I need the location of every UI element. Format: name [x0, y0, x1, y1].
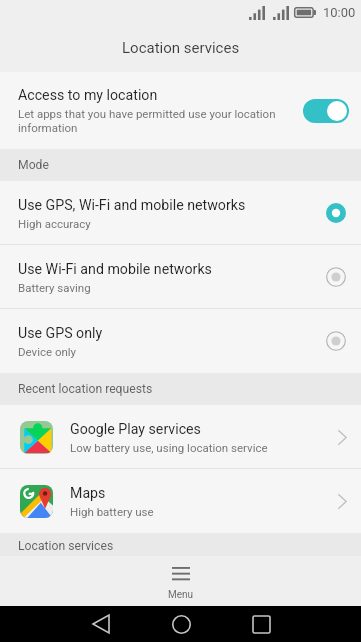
button[interactable]: Back [61, 606, 141, 642]
staticText: Mode [18, 158, 49, 172]
staticText: High accuracy [18, 217, 91, 230]
staticText: Battery saving [18, 281, 91, 294]
button[interactable]: Google Play services [0, 405, 361, 469]
staticText: Use GPS only [18, 325, 103, 342]
staticText: High battery use [70, 505, 154, 518]
button[interactable]: Access to my location [0, 72, 361, 149]
staticText: Let apps that you have permitted use you… [18, 107, 295, 135]
staticText: Access to my location [18, 87, 158, 104]
button[interactable]: Access to my location [303, 99, 349, 123]
staticText: 10:00 [323, 5, 356, 20]
staticText: Location services [122, 39, 240, 57]
button[interactable]: Not selected [324, 329, 348, 353]
staticText: Menu [168, 589, 194, 601]
staticText: Location services [18, 539, 114, 553]
button[interactable]: Not selected [324, 265, 348, 289]
button[interactable]: Menu [142, 556, 220, 601]
staticText: Low battery use, using location service [70, 441, 268, 454]
button[interactable]: Maps [0, 469, 361, 533]
button[interactable]: Home [141, 606, 221, 642]
staticText: Maps [70, 485, 106, 502]
button[interactable]: Use Wi-Fi and mobile networks [0, 245, 361, 309]
staticText: Google Play services [70, 421, 201, 438]
staticText: Device only [18, 345, 77, 358]
button[interactable]: Use GPS, Wi-Fi and mobile networks [0, 181, 361, 245]
staticText: Recent location requests [18, 382, 153, 396]
staticText: Use GPS, Wi-Fi and mobile networks [18, 197, 246, 214]
staticText: Use Wi-Fi and mobile networks [18, 261, 212, 278]
button[interactable]: Recent apps [221, 606, 301, 642]
button[interactable]: Selected [324, 201, 348, 225]
button[interactable]: Use GPS only [0, 309, 361, 373]
